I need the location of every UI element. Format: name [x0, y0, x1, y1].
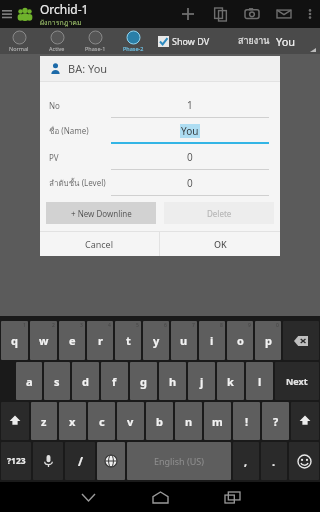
staticText: i — [210, 333, 214, 348]
button[interactable]: Recent apps — [196, 482, 268, 512]
staticText: q — [11, 333, 18, 348]
button[interactable]: 1 — [111, 92, 269, 118]
button[interactable]: h — [159, 362, 186, 400]
button[interactable]: 0 — [111, 170, 269, 196]
staticText: y — [153, 333, 160, 348]
button[interactable]: x — [59, 402, 86, 440]
button[interactable]: b — [146, 402, 173, 440]
staticText: You — [276, 34, 296, 49]
button[interactable]: More options — [300, 0, 320, 28]
button[interactable]: c — [88, 402, 115, 440]
staticText: j — [200, 374, 204, 389]
button[interactable]: 5 — [115, 321, 141, 360]
button[interactable]: Space — [127, 442, 231, 480]
button[interactable]: 2 — [30, 321, 57, 360]
staticText: u — [180, 333, 188, 348]
button[interactable]: Next — [275, 362, 319, 400]
button[interactable]: Phase-2 — [114, 28, 152, 54]
staticText: Delete — [207, 208, 232, 219]
staticText: a — [26, 374, 33, 389]
button[interactable]: Copy — [204, 0, 236, 28]
button[interactable]: 0 — [111, 144, 269, 170]
staticText: Next — [286, 375, 308, 387]
staticText: No — [49, 100, 60, 111]
staticText: OK — [214, 238, 227, 250]
staticText: 0 — [187, 150, 193, 164]
staticText: BA: You — [68, 61, 108, 76]
button[interactable]: k — [217, 362, 244, 400]
staticText: f — [112, 374, 117, 389]
button[interactable]: Active — [38, 28, 76, 54]
button[interactable]: Home — [124, 482, 196, 512]
button[interactable]: Delete — [164, 202, 274, 224]
button[interactable]: 9 — [227, 321, 253, 360]
button[interactable]: m — [204, 402, 231, 440]
button[interactable]: Mail — [268, 0, 300, 28]
button[interactable]: 4 — [87, 321, 113, 360]
staticText: สายงาน — [238, 34, 270, 48]
staticText: English (US) — [154, 455, 204, 467]
button[interactable]: v — [117, 402, 144, 440]
button[interactable]: 7 — [171, 321, 197, 360]
staticText: b — [156, 414, 163, 429]
staticText: n — [185, 414, 193, 429]
button[interactable]: 6 — [143, 321, 169, 360]
staticText: h — [169, 374, 177, 389]
button[interactable]: Emoji — [289, 442, 319, 480]
staticText: e — [69, 333, 76, 348]
button[interactable]: , — [233, 442, 259, 480]
button[interactable]: Cancel — [40, 232, 159, 256]
staticText: , — [244, 454, 248, 469]
button[interactable]: 3 — [59, 321, 85, 360]
button[interactable]: ?123 — [1, 442, 31, 480]
button[interactable]: OK — [160, 232, 280, 256]
staticText: w — [39, 333, 49, 348]
button[interactable]: ! — [233, 402, 260, 440]
staticText: 2 — [52, 322, 55, 329]
button[interactable]: Phase-1 — [76, 28, 114, 54]
button[interactable]: g — [130, 362, 157, 400]
button[interactable]: j — [188, 362, 215, 400]
button[interactable]: ? — [262, 402, 289, 440]
staticText: t — [126, 333, 131, 348]
button[interactable]: f — [101, 362, 128, 400]
button[interactable]: a — [16, 362, 42, 400]
button[interactable]: Normal — [0, 28, 38, 54]
button[interactable]: Shift — [291, 402, 319, 440]
staticText: g — [140, 374, 147, 389]
button[interactable]: s — [44, 362, 70, 400]
staticText: d — [82, 374, 89, 389]
staticText: m — [212, 414, 223, 429]
button[interactable]: You — [111, 118, 269, 144]
button[interactable]: 1 — [1, 321, 28, 360]
button[interactable]: Backspace — [283, 321, 319, 360]
button[interactable]: Add — [172, 0, 204, 28]
button[interactable]: d — [72, 362, 99, 400]
button[interactable]: Camera — [236, 0, 268, 28]
staticText: You — [181, 124, 199, 138]
button[interactable]: n — [175, 402, 202, 440]
button[interactable]: / — [65, 442, 95, 480]
button[interactable]: Menu — [0, 0, 14, 28]
button[interactable]: l — [246, 362, 273, 400]
button[interactable]: z — [31, 402, 57, 440]
button[interactable]: You — [276, 28, 316, 54]
staticText: 8 — [220, 322, 223, 329]
staticText: Show DV — [172, 35, 210, 47]
button[interactable]: 8 — [199, 321, 225, 360]
staticText: Normal — [9, 45, 29, 52]
button[interactable]: Show DV — [158, 35, 210, 47]
staticText: o — [237, 333, 244, 348]
button[interactable]: Voice input — [33, 442, 63, 480]
button[interactable]: . — [261, 442, 287, 480]
button[interactable]: Change language — [97, 442, 125, 480]
button[interactable]: + New Downline — [46, 202, 156, 224]
staticText: / — [78, 453, 83, 469]
staticText: 1 — [23, 322, 26, 329]
staticText: Phase-1 — [85, 45, 106, 52]
staticText: x — [69, 414, 76, 429]
button[interactable]: 0 — [255, 321, 281, 360]
button[interactable]: Shift — [1, 402, 29, 440]
button[interactable]: Back — [52, 482, 124, 512]
staticText: ! — [245, 414, 249, 429]
